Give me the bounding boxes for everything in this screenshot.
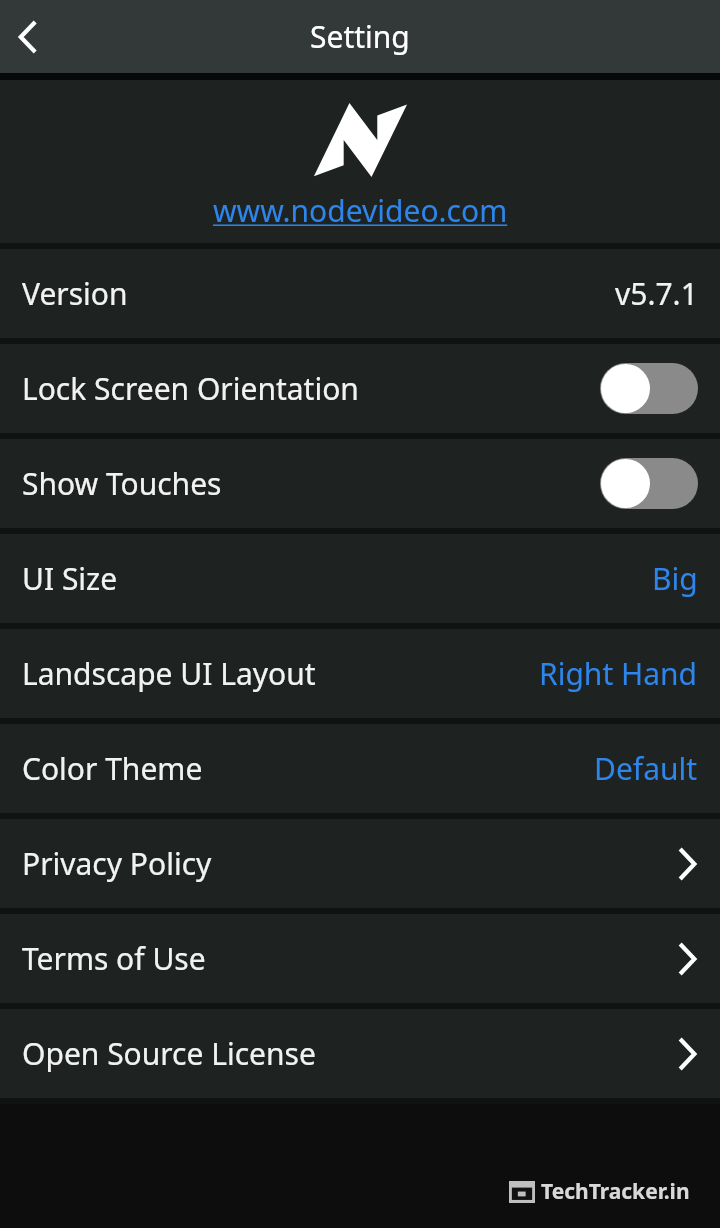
button[interactable]: www.nodevideo.com xyxy=(209,188,512,233)
button[interactable]: Toggle xyxy=(600,363,698,414)
button[interactable]: Version xyxy=(0,249,720,338)
button[interactable]: Terms of Use xyxy=(0,914,720,1003)
button[interactable]: Back xyxy=(0,0,56,73)
button[interactable]: Privacy Policy xyxy=(0,819,720,908)
staticText: Version xyxy=(22,273,128,314)
button[interactable]: UI Size xyxy=(0,534,720,623)
other: Open xyxy=(678,848,698,880)
staticText: Lock Screen Orientation xyxy=(22,368,359,409)
staticText: Big xyxy=(652,558,698,599)
button[interactable]: Landscape UI Layout xyxy=(0,629,720,718)
staticText: Open Source License xyxy=(22,1033,316,1074)
other: Open xyxy=(678,943,698,975)
button[interactable]: Show Touches xyxy=(0,439,720,528)
button[interactable]: Open Source License xyxy=(0,1009,720,1098)
staticText: v5.7.1 xyxy=(615,273,698,314)
other: Open xyxy=(678,1038,698,1070)
staticText: Color Theme xyxy=(22,748,203,789)
button[interactable]: Color Theme xyxy=(0,724,720,813)
staticText: UI Size xyxy=(22,558,118,599)
staticText: Setting xyxy=(310,16,410,57)
staticText: www.nodevideo.com xyxy=(213,190,508,231)
staticText: Terms of Use xyxy=(22,938,206,979)
staticText: Privacy Policy xyxy=(22,843,212,884)
button[interactable]: Toggle xyxy=(600,458,698,509)
staticText: Show Touches xyxy=(22,463,222,504)
staticText: Landscape UI Layout xyxy=(22,653,316,694)
staticText: Default xyxy=(594,748,698,789)
button[interactable]: Lock Screen Orientation xyxy=(0,344,720,433)
staticText: TechTracker.in xyxy=(541,1177,690,1206)
staticText: Right Hand xyxy=(539,653,698,694)
